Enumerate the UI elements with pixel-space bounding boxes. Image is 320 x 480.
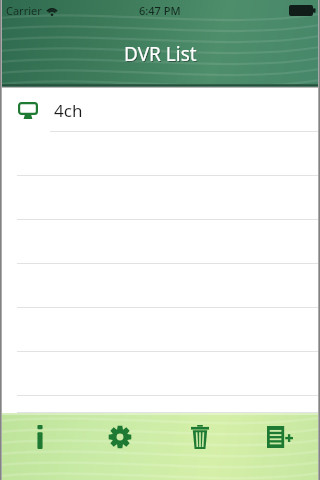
button[interactable]: Info: [14, 414, 66, 460]
staticText: DVR List: [125, 42, 198, 68]
button[interactable]: Add: [254, 414, 306, 460]
staticText: 6:47 PM: [139, 3, 181, 18]
staticText: DVR List: [124, 41, 197, 67]
staticText: Carrier: [6, 3, 42, 18]
button[interactable]: Delete: [174, 414, 226, 460]
button[interactable]: Settings: [94, 414, 146, 460]
button[interactable]: [0, 396, 320, 413]
button[interactable]: [0, 220, 320, 264]
button[interactable]: [0, 352, 320, 396]
button[interactable]: [0, 264, 320, 308]
button[interactable]: [0, 308, 320, 352]
button[interactable]: [0, 176, 320, 220]
button[interactable]: [0, 132, 320, 176]
button[interactable]: 4ch: [0, 88, 320, 132]
staticText: 4ch: [54, 99, 83, 122]
